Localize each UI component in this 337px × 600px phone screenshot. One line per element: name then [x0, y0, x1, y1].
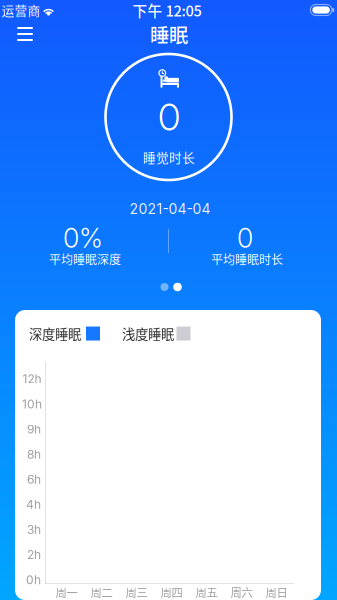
- staticText: 12h: [22, 372, 41, 386]
- staticText: 周二: [90, 584, 112, 600]
- staticText: 平均睡眠时长: [211, 250, 283, 268]
- staticText: 0: [158, 94, 180, 140]
- staticText: 下午 12:05: [132, 0, 201, 21]
- staticText: 周五: [195, 584, 217, 600]
- staticText: 深度睡眠: [29, 324, 81, 343]
- staticText: 睡眠: [150, 20, 188, 48]
- staticText: 平均睡眠深度: [49, 250, 121, 268]
- staticText: 2h: [27, 547, 41, 562]
- staticText: 2021-04-04: [129, 200, 210, 217]
- staticText: 0%: [63, 222, 103, 254]
- staticText: 0h: [26, 572, 41, 587]
- staticText: 运营商: [1, 1, 40, 19]
- staticText: 10h: [22, 397, 42, 411]
- staticText: 周三: [125, 584, 147, 600]
- staticText: 3h: [27, 522, 41, 537]
- staticText: 周日: [265, 584, 287, 600]
- staticText: 浅度睡眠: [122, 324, 174, 343]
- staticText: 周六: [230, 584, 252, 600]
- button[interactable]: Menu: [3, 14, 47, 54]
- staticText: 睡觉时长: [143, 148, 195, 166]
- staticText: 周四: [160, 584, 182, 600]
- staticText: 0: [237, 222, 253, 254]
- staticText: 周一: [55, 584, 77, 600]
- staticText: 9h: [27, 422, 41, 436]
- staticText: 4h: [26, 497, 41, 512]
- staticText: 8h: [27, 447, 41, 461]
- staticText: 6h: [27, 472, 41, 487]
